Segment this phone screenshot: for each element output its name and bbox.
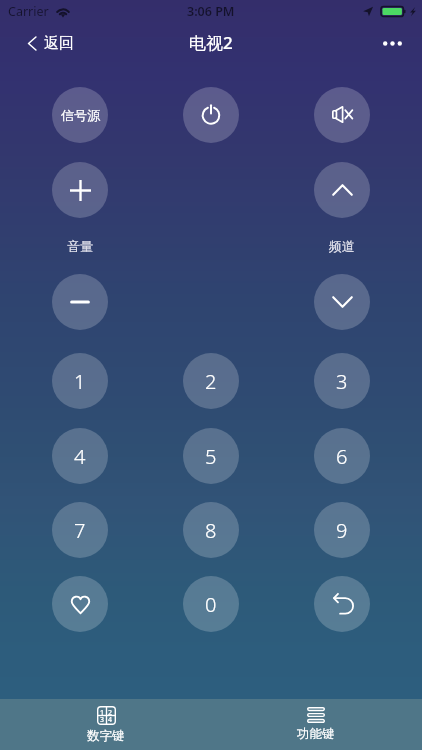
button[interactable]: 3 [314, 353, 370, 409]
staticText: 数字键 [87, 728, 125, 744]
staticText: 7 [74, 517, 86, 544]
staticText: 功能键 [297, 726, 335, 742]
button[interactable]: 9 [314, 502, 370, 558]
staticText: 3 [336, 368, 348, 395]
button[interactable]: Channel down [314, 274, 370, 330]
staticText: 1 [100, 708, 105, 715]
staticText: 3:06 PM [187, 3, 235, 20]
staticText: 电视2 [189, 31, 233, 54]
button[interactable]: 2 [183, 353, 239, 409]
button[interactable]: Volume down [52, 274, 108, 330]
staticText: 2 [205, 368, 217, 395]
staticText: 0 [205, 591, 217, 618]
staticText: 1 [74, 368, 86, 395]
staticText: 9 [336, 517, 348, 544]
button[interactable]: 8 [183, 502, 239, 558]
button[interactable]: 5 [183, 428, 239, 484]
staticText: 4 [108, 715, 113, 723]
button[interactable]: Channel up [314, 162, 370, 218]
button[interactable]: 6 [314, 428, 370, 484]
button[interactable]: Mute [314, 87, 370, 143]
staticText: 音量 [67, 238, 93, 254]
button[interactable]: 功能键 [276, 699, 356, 750]
button[interactable]: 7 [52, 502, 108, 558]
staticText: 返回 [44, 34, 74, 53]
staticText: 3 [100, 715, 105, 723]
button[interactable]: Back [314, 576, 370, 632]
staticText: 频道 [329, 238, 355, 254]
staticText: 信号源 [61, 107, 100, 123]
button[interactable]: 返回 [0, 26, 88, 61]
button[interactable]: 0 [183, 576, 239, 632]
staticText: 6 [336, 443, 348, 470]
button[interactable]: 4 [52, 428, 108, 484]
button[interactable]: 1 [52, 353, 108, 409]
button[interactable]: 1 [66, 699, 146, 750]
button[interactable]: Power [183, 87, 239, 143]
staticText: 8 [205, 517, 217, 544]
staticText: 5 [205, 443, 217, 470]
staticText: Carrier [8, 3, 49, 20]
button[interactable]: More options [369, 29, 422, 58]
button[interactable]: Volume up [52, 162, 108, 218]
button[interactable]: 信号源 [52, 87, 108, 143]
staticText: 4 [74, 443, 86, 470]
staticText: 2 [108, 708, 113, 715]
button[interactable]: Favorite [52, 576, 108, 632]
